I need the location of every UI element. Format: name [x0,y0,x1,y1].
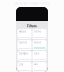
button[interactable]: Era [17,62,31,72]
staticText: Key [33,52,38,55]
button[interactable]: Genre [17,40,31,50]
staticText: Era [18,63,22,66]
staticText: Filters [27,24,37,28]
staticText: Tempo [18,52,28,55]
button[interactable]: Style [32,40,46,50]
button[interactable]: Key [32,51,46,61]
button[interactable]: Mix [32,62,46,72]
staticText: Mood [18,30,26,33]
staticText: Tone [33,30,41,33]
button[interactable]: Tempo [17,51,31,61]
staticText: Mood and Tempo Filters [14,2,49,5]
staticText: Style [33,41,41,44]
staticText: Genre [18,41,27,44]
button[interactable]: Tone [32,29,46,39]
staticText: Mix [33,63,37,66]
button[interactable]: Mood [17,29,31,39]
